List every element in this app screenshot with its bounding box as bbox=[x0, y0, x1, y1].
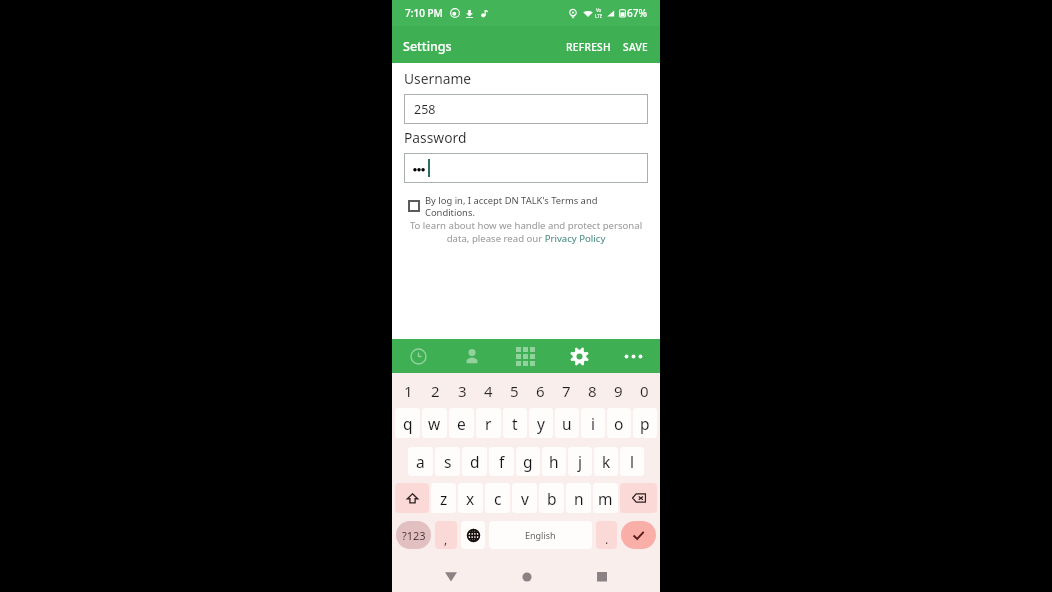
button[interactable]: s bbox=[435, 447, 460, 476]
staticText: g bbox=[523, 451, 533, 472]
staticText: 7 bbox=[562, 381, 571, 401]
staticText: p bbox=[640, 413, 650, 434]
button[interactable]: Contacts bbox=[445, 339, 498, 373]
button[interactable]: 4 bbox=[475, 373, 501, 408]
staticText: 1 bbox=[404, 381, 413, 401]
button[interactable]: h bbox=[542, 447, 566, 476]
staticText: h bbox=[549, 451, 559, 472]
button[interactable]: Shift bbox=[395, 483, 429, 513]
staticText: x bbox=[466, 488, 475, 509]
button[interactable]: u bbox=[555, 408, 579, 438]
button[interactable]: Enter bbox=[621, 521, 656, 549]
button[interactable]: n bbox=[566, 483, 591, 513]
button[interactable]: d bbox=[462, 447, 487, 476]
button[interactable]: Change language bbox=[461, 521, 485, 549]
button[interactable]: REFRESH bbox=[563, 30, 614, 60]
staticText: 67% bbox=[627, 6, 647, 20]
button[interactable]: r bbox=[476, 408, 501, 438]
staticText: , bbox=[444, 531, 448, 547]
button[interactable]: ?123 bbox=[396, 521, 431, 549]
button[interactable] bbox=[404, 153, 648, 183]
button[interactable]: e bbox=[449, 408, 474, 438]
staticText: SAVE bbox=[623, 40, 649, 54]
button[interactable]: 8 bbox=[579, 373, 605, 408]
staticText: o bbox=[614, 413, 624, 434]
button[interactable]: 7 bbox=[553, 373, 579, 408]
staticText: k bbox=[602, 451, 611, 472]
staticText: b bbox=[547, 488, 557, 509]
staticText: Password bbox=[404, 128, 467, 147]
staticText: s bbox=[444, 451, 452, 472]
staticText: n bbox=[574, 488, 584, 509]
button[interactable]: o bbox=[607, 408, 631, 438]
button[interactable]: i bbox=[581, 408, 605, 438]
button[interactable]: SAVE bbox=[620, 30, 652, 60]
staticText: 4 bbox=[484, 381, 493, 401]
button[interactable]: Home bbox=[489, 555, 564, 592]
staticText: j bbox=[578, 451, 582, 472]
button[interactable]: y bbox=[529, 408, 553, 438]
button[interactable]: Settings bbox=[552, 339, 606, 373]
staticText: m bbox=[598, 488, 613, 509]
staticText: Settings bbox=[403, 38, 452, 55]
button[interactable]: l bbox=[620, 447, 644, 476]
button[interactable]: 5 bbox=[501, 373, 527, 408]
staticText: 9 bbox=[614, 381, 623, 401]
staticText: a bbox=[416, 451, 425, 472]
staticText: f bbox=[499, 451, 505, 472]
button[interactable]: Accept terms bbox=[408, 200, 420, 212]
staticText: q bbox=[403, 413, 413, 434]
staticText: 3 bbox=[458, 381, 467, 401]
button[interactable]: 1 bbox=[395, 373, 422, 408]
staticText: . bbox=[605, 531, 609, 547]
button[interactable]: c bbox=[485, 483, 510, 513]
button[interactable]: 258 bbox=[404, 94, 648, 124]
staticText: 7:10 PM bbox=[405, 6, 443, 20]
staticText: 2 bbox=[431, 381, 440, 401]
button[interactable]: Keypad bbox=[498, 339, 552, 373]
staticText: To learn about how we handle and protect… bbox=[406, 219, 646, 244]
button[interactable]: j bbox=[568, 447, 592, 476]
button[interactable]: w bbox=[422, 408, 447, 438]
staticText: Username bbox=[404, 69, 472, 88]
button[interactable]: Recents bbox=[392, 339, 445, 373]
button[interactable]: t bbox=[503, 408, 527, 438]
staticText: 0 bbox=[640, 381, 649, 401]
staticText: Vo bbox=[596, 7, 602, 13]
button[interactable]: 3 bbox=[449, 373, 475, 408]
button[interactable]: a bbox=[408, 447, 433, 476]
staticText: 258 bbox=[414, 101, 436, 118]
staticText: z bbox=[440, 488, 448, 509]
button[interactable]: x bbox=[458, 483, 483, 513]
button[interactable]: v bbox=[512, 483, 537, 513]
button[interactable]: b bbox=[539, 483, 564, 513]
staticText: 5 bbox=[510, 381, 519, 401]
staticText: w bbox=[428, 413, 441, 434]
button[interactable]: 0 bbox=[631, 373, 657, 408]
staticText: u bbox=[562, 413, 572, 434]
button[interactable]: p bbox=[633, 408, 657, 438]
staticText: 6 bbox=[536, 381, 545, 401]
button[interactable]: Back bbox=[413, 555, 489, 592]
staticText: c bbox=[494, 488, 502, 509]
button[interactable]: q bbox=[395, 408, 420, 438]
button[interactable]: 6 bbox=[527, 373, 553, 408]
button[interactable]: z bbox=[431, 483, 456, 513]
button[interactable]: Recent apps bbox=[564, 555, 639, 592]
staticText: LTE bbox=[595, 13, 603, 19]
staticText: l bbox=[630, 451, 634, 472]
button[interactable]: . bbox=[596, 521, 617, 549]
button[interactable]: k bbox=[594, 447, 618, 476]
button[interactable]: Backspace bbox=[620, 483, 657, 513]
button[interactable]: g bbox=[516, 447, 540, 476]
button[interactable]: 9 bbox=[605, 373, 631, 408]
button[interactable]: f bbox=[489, 447, 514, 476]
staticText: 8 bbox=[588, 381, 597, 401]
button[interactable]: , bbox=[435, 521, 457, 549]
button[interactable]: 2 bbox=[422, 373, 449, 408]
staticText: i bbox=[591, 413, 595, 434]
button[interactable]: m bbox=[593, 483, 618, 513]
staticText: y bbox=[537, 413, 545, 434]
button[interactable]: English bbox=[489, 521, 592, 549]
button[interactable]: More bbox=[606, 339, 660, 373]
